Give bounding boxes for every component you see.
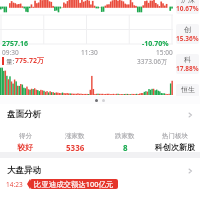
button[interactable]: 沪深 — [176, 0, 199, 14]
button[interactable]: 科 — [176, 54, 199, 74]
staticText: 15:00 — [156, 48, 173, 57]
staticText: -10.70% — [142, 39, 169, 49]
staticText: 热门板块 — [162, 132, 188, 140]
staticText: 14:23 — [6, 180, 23, 189]
staticText: 科 — [184, 55, 191, 64]
staticText: 11:30 — [81, 48, 98, 57]
staticText: 775.72万 — [15, 56, 44, 66]
staticText: 5336 — [66, 142, 85, 153]
staticText: 3373.06万 — [137, 57, 168, 66]
staticText: 得分 — [19, 132, 32, 140]
button[interactable]: 恒生 — [176, 84, 199, 104]
staticText: 恒生 — [181, 85, 195, 94]
staticText: 量: — [6, 57, 15, 66]
staticText: 大盘异动 — [7, 165, 41, 176]
staticText: 较好 — [17, 142, 33, 152]
staticText: 创 — [184, 25, 191, 34]
staticText: 跌家数 — [115, 132, 135, 140]
staticText: 8 — [123, 142, 128, 153]
staticText: 涨家数 — [65, 132, 85, 140]
button[interactable]: 盘面分析 — [0, 104, 200, 150]
staticText: 15.36% — [176, 34, 199, 43]
staticText: 10.67% — [176, 4, 199, 13]
staticText: 盘面分析 — [7, 109, 41, 120]
staticText: 17.88% — [176, 64, 199, 73]
staticText: 沪深 — [181, 0, 195, 4]
other: More — [186, 167, 194, 175]
button[interactable]: 创 — [176, 24, 199, 44]
button[interactable]: 14:23 — [6, 179, 118, 189]
staticText: 2757.16 — [2, 39, 28, 49]
staticText: 比亚迪成交额达100亿元 — [34, 179, 114, 189]
staticText: 09:30 — [2, 48, 19, 57]
other: More — [186, 111, 194, 119]
staticText: 科创次新股 — [155, 142, 195, 152]
